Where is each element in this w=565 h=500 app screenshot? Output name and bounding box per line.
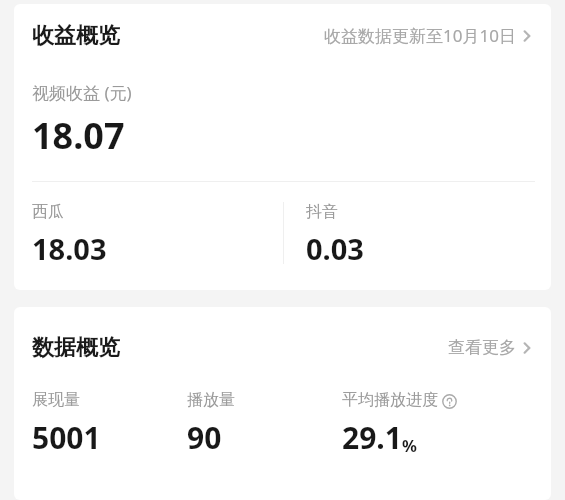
button[interactable]: 收益数据详情	[322, 20, 535, 51]
staticText: 视频收益 (元)	[32, 81, 132, 104]
staticText: 5001	[32, 417, 101, 458]
staticText: %	[402, 434, 417, 456]
staticText: 平均播放进度	[342, 390, 438, 410]
staticText: 收益数据更新至10月10日	[324, 24, 516, 47]
staticText: 90	[187, 417, 222, 458]
staticText: 播放量	[187, 390, 235, 410]
staticText: 西瓜	[32, 202, 64, 222]
staticText: 18.07	[32, 111, 125, 160]
button[interactable]: 查看更多数据	[446, 333, 535, 362]
staticText: 查看更多	[448, 337, 516, 358]
staticText: 收益概览	[32, 22, 120, 50]
staticText: 29.1	[342, 417, 402, 458]
staticText: 数据概览	[32, 334, 120, 362]
staticText: 展现量	[32, 390, 80, 410]
staticText: 18.03	[32, 229, 107, 268]
staticText: 抖音	[306, 202, 338, 222]
staticText: 0.03	[306, 229, 364, 268]
